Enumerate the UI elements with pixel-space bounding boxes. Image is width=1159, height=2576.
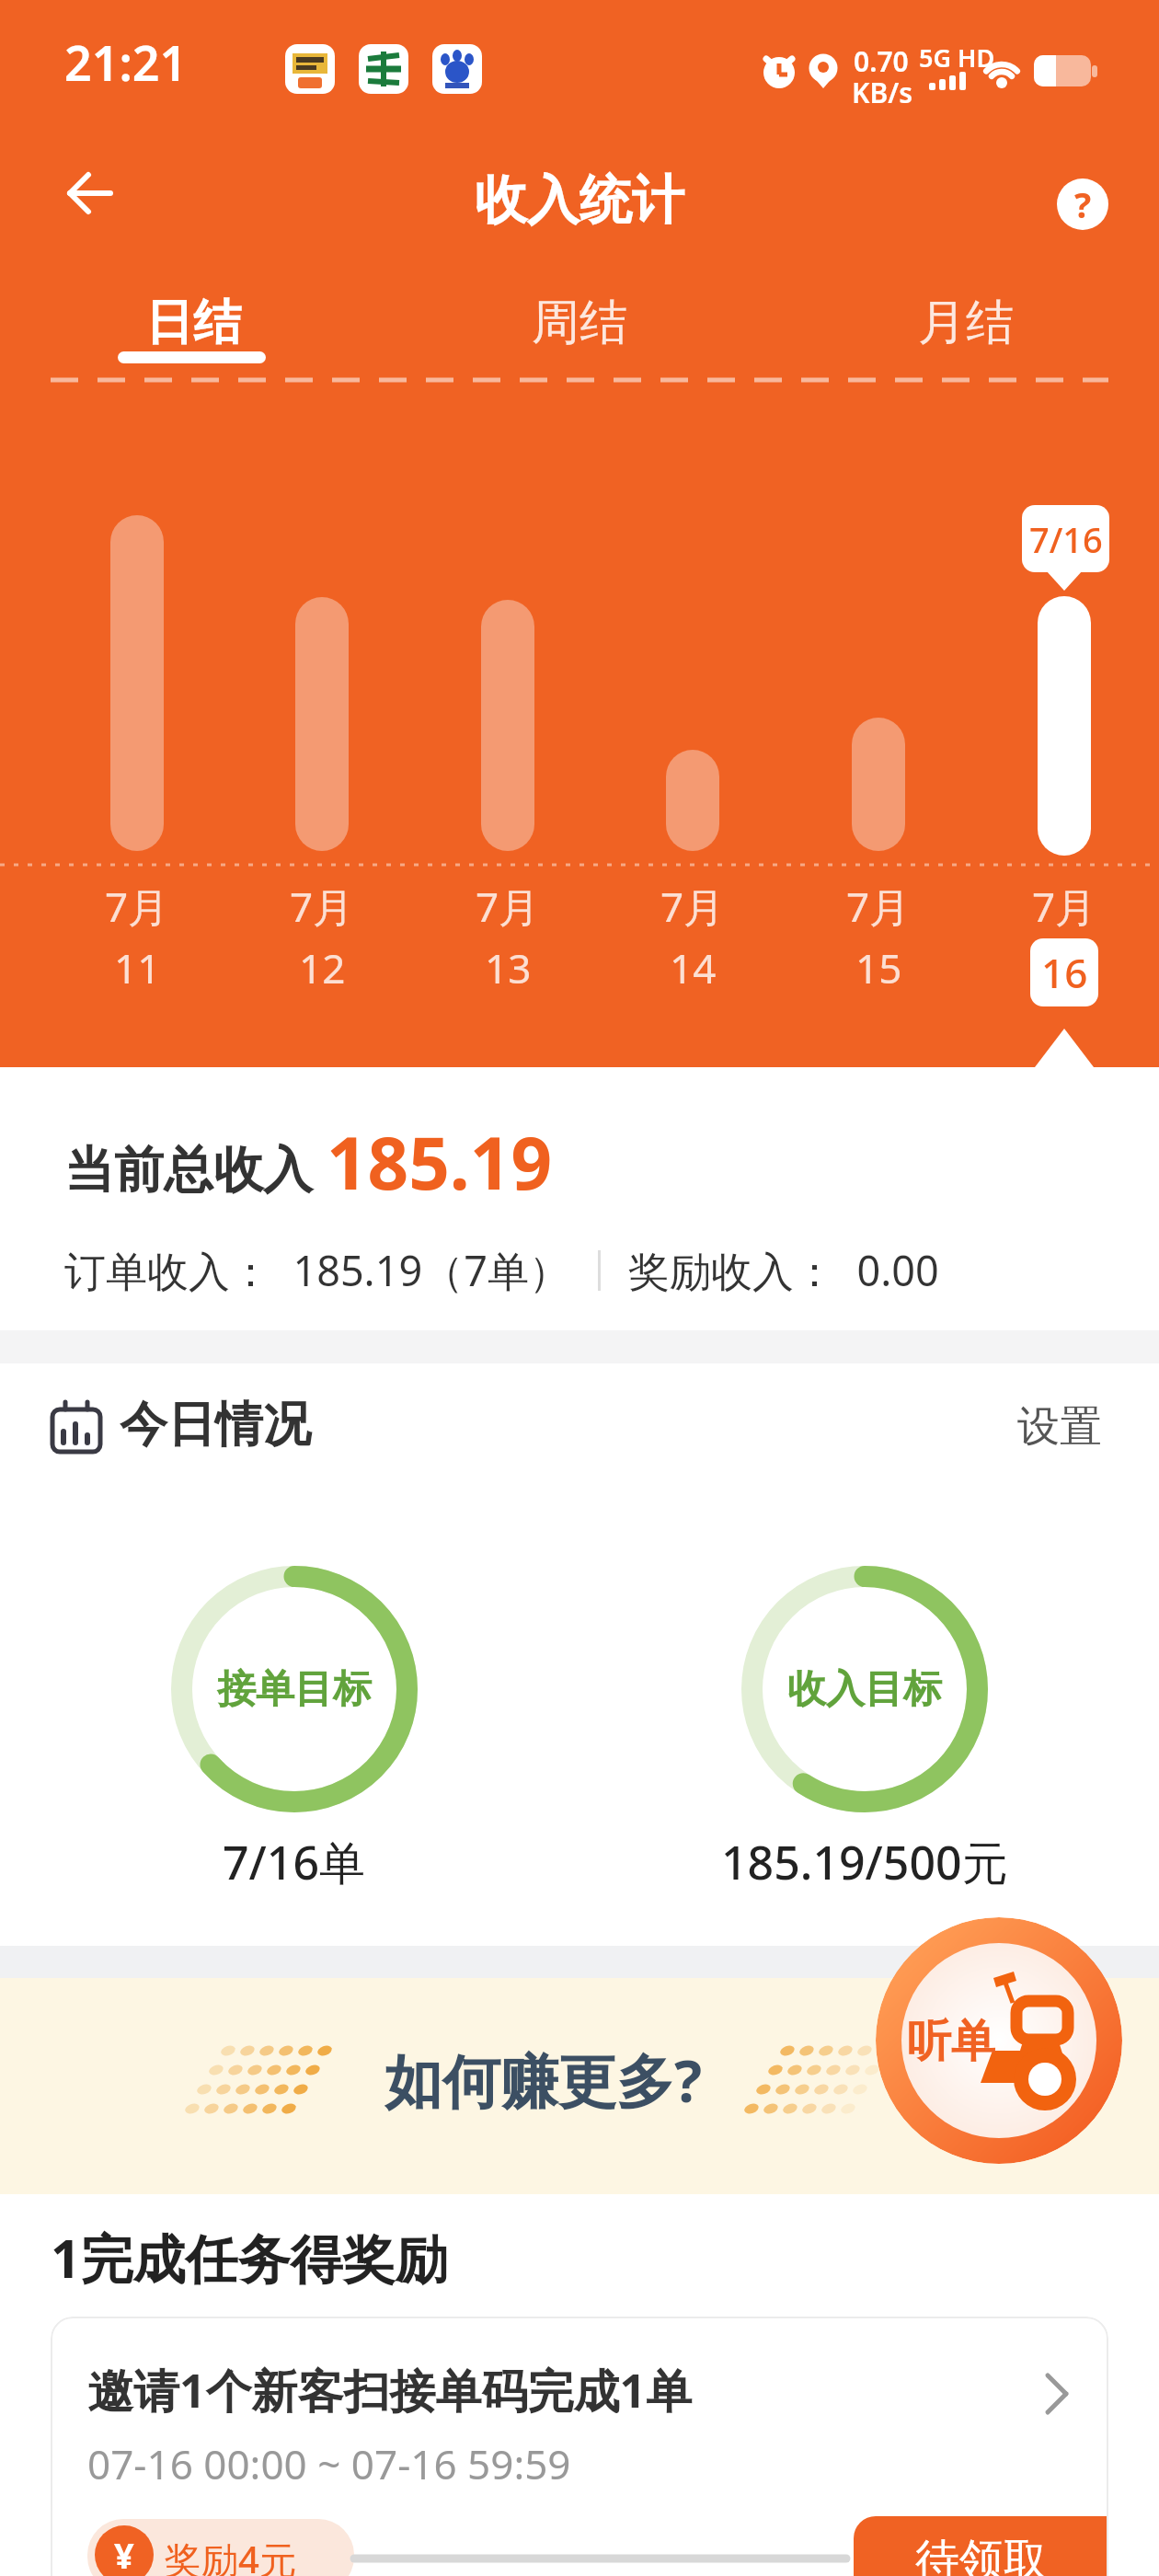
staticText: 21:21 [64,29,188,95]
button[interactable] [66,169,114,217]
staticText: 185.19/500元 [721,1831,1008,1893]
staticText: ¥ [114,2531,134,2576]
staticText: 收入统计 [475,167,684,234]
button[interactable]: 待领取 [854,2516,1108,2576]
staticText: 订单收入： 185.19（7单） [64,1242,570,1298]
staticText: 周结 [532,293,627,353]
staticText: 14 [670,940,717,995]
staticText: 如何赚更多? [384,2041,703,2120]
button[interactable]: 邀请1个新客扫接单码完成1单 [51,2317,1108,2576]
staticText: KB/s [852,74,912,111]
staticText: 1完成任务得奖励 [51,2222,448,2294]
staticText: 07-16 00:00 ~ 07-16 59:59 [87,2436,571,2491]
staticText: 5G HD [919,40,995,75]
staticText: 7/16 [1029,515,1103,563]
staticText: 奖励4元 [165,2534,296,2576]
staticText: 0.70 [854,42,909,80]
staticText: 185.19 [327,1113,552,1211]
staticText: 7月 [846,879,911,934]
staticText: 7/16单 [223,1831,366,1893]
staticText: 收入目标 [787,1665,942,1714]
button[interactable]: 周结 [386,293,773,375]
staticText: 7月 [660,879,725,934]
staticText: 奖励收入： 0.00 [628,1242,939,1298]
staticText: 今日情况 [120,1395,311,1455]
staticText: 13 [485,940,532,995]
staticText: 12 [299,940,346,995]
button[interactable]: ? [1057,178,1108,230]
staticText: 日结 [145,293,241,353]
staticText: 听单 [907,2014,995,2069]
staticText: ? [1074,180,1092,228]
staticText: 当前总收入 [64,1133,327,1202]
staticText: 15 [855,940,902,995]
staticText: 接单目标 [217,1665,372,1714]
staticText: 7月 [290,879,354,934]
staticText: 7月 [105,879,169,934]
staticText: 邀请1个新客扫接单码完成1单 [87,2359,693,2421]
staticText: 16 [1041,945,1088,1000]
staticText: 待领取 [915,2533,1048,2576]
button[interactable]: 听单 [876,1917,1122,2164]
staticText: 7月 [476,879,540,934]
button[interactable]: 月结 [773,293,1159,375]
staticText: 7月 [1032,879,1096,934]
button[interactable]: 设置 [1017,1400,1102,1454]
button[interactable]: 日结 [0,293,386,375]
staticText: 月结 [918,293,1014,353]
staticText: 11 [114,940,161,995]
